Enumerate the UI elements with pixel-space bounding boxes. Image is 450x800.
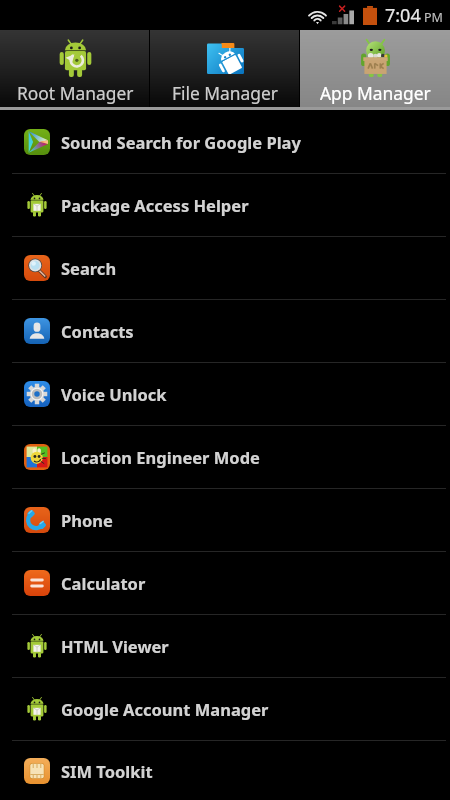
button[interactable]: Search: [0, 237, 450, 300]
staticText: 7:04: [385, 3, 421, 28]
button[interactable]: Sound Search for Google Play: [0, 111, 450, 174]
staticText: Contacts: [61, 320, 134, 342]
button[interactable]: HTML Viewer: [0, 615, 450, 678]
staticText: HTML Viewer: [61, 635, 169, 657]
staticText: PM: [424, 9, 443, 26]
button[interactable]: SIM Toolkit: [0, 741, 450, 800]
button[interactable]: Root Manager: [0, 30, 150, 107]
staticText: Package Access Helper: [61, 194, 249, 216]
staticText: SIM Toolkit: [61, 760, 153, 782]
staticText: Search: [61, 257, 117, 279]
button[interactable]: Google Account Manager: [0, 678, 450, 741]
staticText: Google Account Manager: [61, 698, 269, 720]
staticText: Location Engineer Mode: [61, 446, 260, 468]
staticText: Voice Unlock: [61, 383, 167, 405]
button[interactable]: File Manager: [150, 30, 300, 107]
staticText: Root Manager: [17, 81, 134, 105]
staticText: Phone: [61, 509, 113, 531]
button[interactable]: Calculator: [0, 552, 450, 615]
button[interactable]: Location Engineer Mode: [0, 426, 450, 489]
staticText: Sound Search for Google Play: [61, 131, 301, 153]
staticText: App Manager: [320, 81, 431, 105]
staticText: File Manager: [172, 81, 279, 105]
button[interactable]: Voice Unlock: [0, 363, 450, 426]
button[interactable]: Contacts: [0, 300, 450, 363]
button[interactable]: Phone: [0, 489, 450, 552]
button[interactable]: App Manager: [300, 30, 450, 107]
button[interactable]: Package Access Helper: [0, 174, 450, 237]
staticText: Calculator: [61, 572, 146, 594]
